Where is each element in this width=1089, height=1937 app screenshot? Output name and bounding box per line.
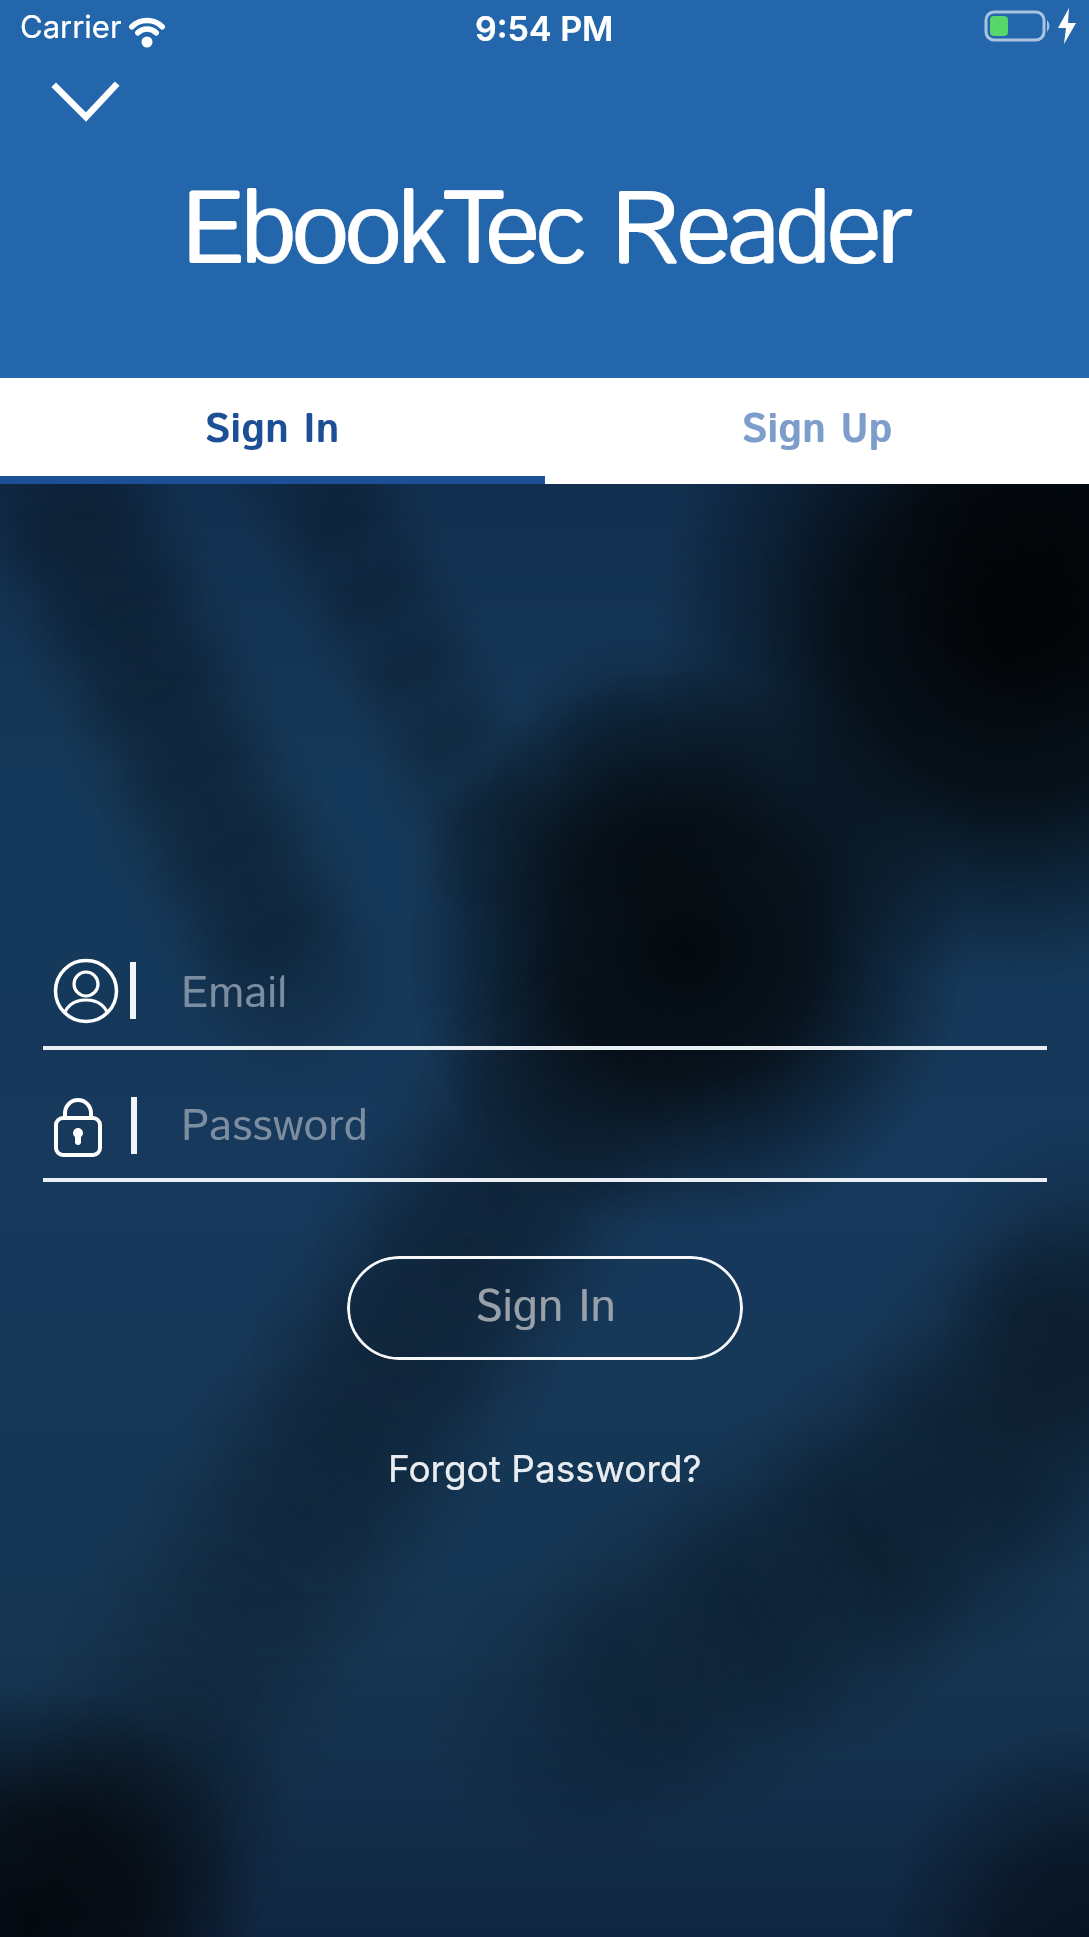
staticText: Password [181, 1096, 368, 1159]
button[interactable] [40, 68, 132, 134]
staticText: Carrier [20, 8, 122, 46]
staticText: Email [181, 963, 288, 1026]
staticText: Sign In [204, 401, 340, 460]
button[interactable]: Email [43, 959, 1047, 1023]
staticText: EbookTec Reader [181, 158, 908, 308]
button[interactable]: Forgot Password? [388, 1446, 702, 1491]
button[interactable]: Sign In [347, 1256, 743, 1360]
staticText: 9:54 PM [475, 8, 614, 49]
button[interactable]: Sign Up [544, 378, 1089, 484]
button[interactable]: Sign In [0, 378, 544, 484]
staticText: Sign Up [741, 401, 893, 460]
staticText: Sign In [475, 1275, 616, 1341]
button[interactable]: Password [43, 1092, 1047, 1156]
staticText: Forgot Password? [388, 1446, 702, 1491]
